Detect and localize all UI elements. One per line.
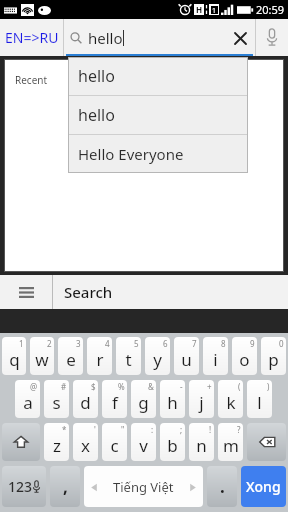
button[interactable]: Numbers and voice [2, 466, 46, 507]
staticText: 8 [221, 338, 226, 349]
staticText: * [62, 424, 67, 435]
button[interactable]: Clear [231, 29, 249, 47]
button[interactable]: Voice search [256, 19, 288, 56]
staticText: u [181, 348, 192, 371]
button[interactable]: Hello Everyone [68, 135, 248, 173]
button[interactable]: q [2, 337, 26, 375]
staticText: q [9, 348, 20, 371]
button[interactable]: t [116, 337, 141, 375]
staticText: + [207, 381, 212, 392]
staticText: hello [88, 28, 123, 48]
button[interactable]: r [87, 337, 112, 375]
staticText: m [223, 434, 239, 457]
staticText: hello [78, 65, 115, 87]
button[interactable]: g [131, 380, 156, 418]
staticText: 0 [279, 338, 284, 349]
button[interactable]: b [160, 423, 185, 461]
staticText: ' [94, 424, 96, 435]
staticText: 20:59 [256, 2, 285, 17]
button[interactable]: z [44, 423, 69, 461]
button[interactable]: c [102, 423, 127, 461]
button[interactable]: l [247, 380, 272, 418]
button[interactable]: k [218, 380, 243, 418]
staticText: 1 [212, 6, 217, 14]
staticText: ? [237, 424, 241, 435]
button[interactable]: Tiếng Việt [84, 466, 203, 507]
staticText: H [196, 4, 203, 15]
staticText: 7 [192, 338, 197, 349]
staticText: ! [209, 424, 212, 435]
staticText: n [196, 434, 207, 457]
staticText: k [226, 391, 236, 414]
staticText: 9 [250, 338, 255, 349]
staticText: 3 [76, 338, 81, 349]
staticText: " [121, 424, 125, 435]
button[interactable]: Search [64, 19, 255, 56]
button[interactable]: d [73, 380, 98, 418]
button[interactable]: e [58, 337, 83, 375]
button[interactable]: m [218, 423, 243, 461]
staticText: Hello Everyone [78, 144, 184, 164]
staticText: # [61, 381, 67, 392]
staticText: v [139, 434, 148, 457]
staticText: 1 [19, 338, 24, 349]
button[interactable]: u [174, 337, 199, 375]
button[interactable]: hello [68, 96, 248, 134]
staticText: y [153, 348, 162, 371]
button[interactable]: Comma [50, 466, 80, 507]
staticText: EN=>RU [5, 28, 59, 47]
button[interactable]: Shift [2, 423, 40, 461]
staticText: ; [180, 424, 183, 435]
button[interactable]: Period [207, 466, 237, 507]
staticText: 4 [105, 338, 110, 349]
button[interactable]: x [73, 423, 98, 461]
button[interactable]: s [44, 380, 69, 418]
staticText: , [63, 475, 68, 498]
button[interactable]: f [102, 380, 127, 418]
staticText: : [151, 424, 154, 435]
button[interactable]: n [189, 423, 214, 461]
button[interactable]: v [131, 423, 156, 461]
button[interactable]: j [189, 380, 214, 418]
other: Search [70, 32, 82, 44]
button[interactable]: o [232, 337, 257, 375]
staticText: 5 [134, 338, 139, 349]
button[interactable]: p [261, 337, 286, 375]
staticText: z [53, 434, 61, 457]
button[interactable]: a [15, 380, 40, 418]
staticText: g [138, 391, 149, 414]
staticText: Search [64, 282, 113, 302]
staticText: & [148, 381, 154, 392]
staticText: $ [91, 381, 96, 392]
staticText: - [180, 381, 183, 392]
staticText: Tiếng Việt [113, 478, 174, 496]
staticText: p [268, 348, 279, 371]
staticText: 2 [47, 338, 52, 349]
staticText: hello [78, 104, 115, 126]
button[interactable]: hello [68, 57, 248, 95]
staticText: s [52, 391, 61, 414]
staticText: i [213, 348, 218, 371]
button[interactable]: Menu [0, 275, 52, 309]
button[interactable]: i [203, 337, 228, 375]
staticText: f [112, 391, 118, 414]
staticText: x [81, 434, 90, 457]
staticText: o [239, 348, 250, 371]
staticText: h [167, 391, 178, 414]
button[interactable]: y [145, 337, 170, 375]
staticText: 6 [163, 338, 168, 349]
staticText: d [80, 391, 91, 414]
staticText: Xong [246, 477, 281, 496]
button[interactable]: Search [53, 275, 288, 309]
button[interactable]: w [30, 337, 54, 375]
staticText: a [23, 391, 33, 414]
staticText: . [220, 475, 225, 498]
button[interactable]: h [160, 380, 185, 418]
staticText: % [118, 381, 125, 392]
button[interactable]: Xong [241, 466, 286, 507]
button[interactable]: Backspace [247, 423, 286, 461]
staticText: l [257, 391, 262, 414]
button[interactable]: EN=>RU [0, 19, 63, 56]
staticText: ) [267, 381, 270, 392]
staticText: j [199, 391, 204, 414]
